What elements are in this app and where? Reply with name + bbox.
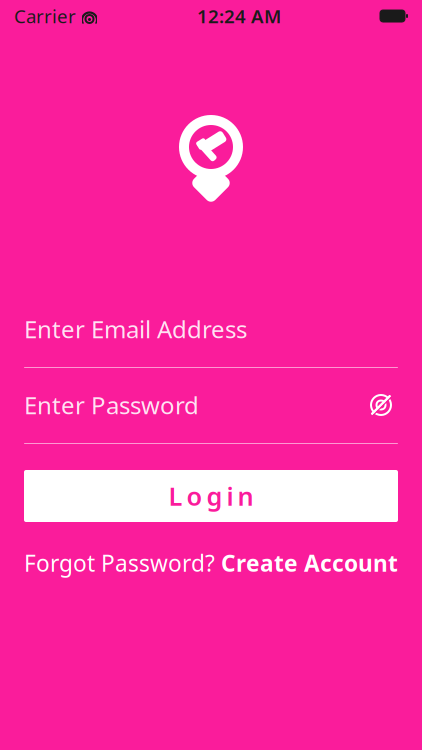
staticText: 12:24 AM [197, 4, 281, 28]
staticText: Login [168, 479, 253, 513]
staticText: Carrier [14, 4, 76, 28]
button[interactable]: Login [24, 470, 398, 522]
button[interactable]: Create Account [221, 548, 398, 578]
staticText: Enter Email Address [24, 313, 247, 345]
button[interactable]: Forgot Password? [24, 548, 215, 578]
staticText: Create Account [221, 548, 398, 578]
staticText: Enter Password [24, 389, 199, 421]
button[interactable]: Show password [364, 390, 398, 420]
staticText: Forgot Password? [24, 548, 215, 578]
